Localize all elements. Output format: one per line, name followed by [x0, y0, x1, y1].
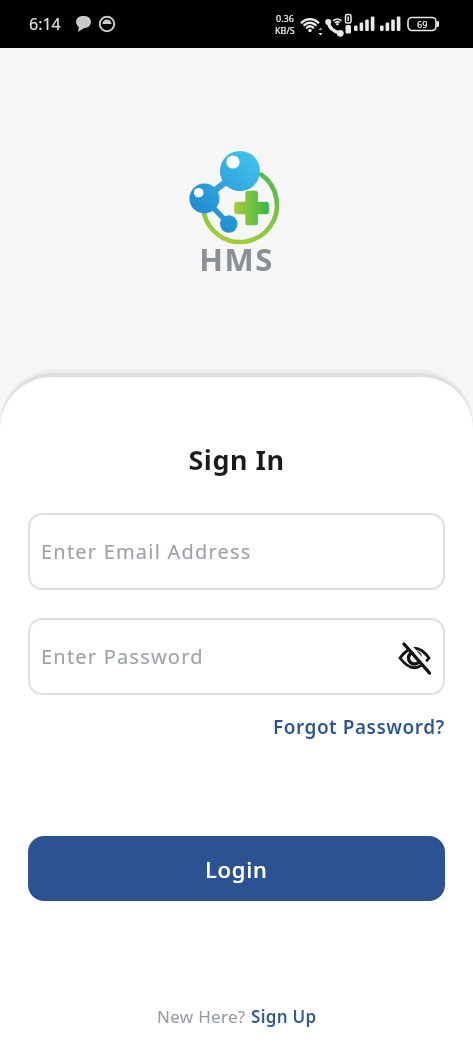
staticText: Login: [205, 854, 268, 884]
button[interactable]: Enter Email Address: [28, 513, 445, 590]
button[interactable]: Forgot Password?: [273, 714, 445, 740]
staticText: Enter Email Address: [41, 538, 252, 565]
staticText: New Here?: [157, 1005, 251, 1028]
staticText: 69: [417, 18, 428, 30]
staticText: Sign In: [28, 441, 445, 478]
staticText: KB/S: [275, 24, 295, 36]
button[interactable]: New Here?: [28, 1005, 445, 1028]
staticText: Sign Up: [251, 1005, 317, 1028]
staticText: HMS: [0, 238, 473, 280]
staticText: Enter Password: [41, 643, 204, 670]
staticText: 0.36: [276, 12, 294, 24]
button[interactable]: Login: [28, 836, 445, 901]
button[interactable]: Enter Password: [28, 618, 445, 695]
staticText: 6:14: [29, 13, 61, 35]
button[interactable]: [398, 640, 432, 674]
